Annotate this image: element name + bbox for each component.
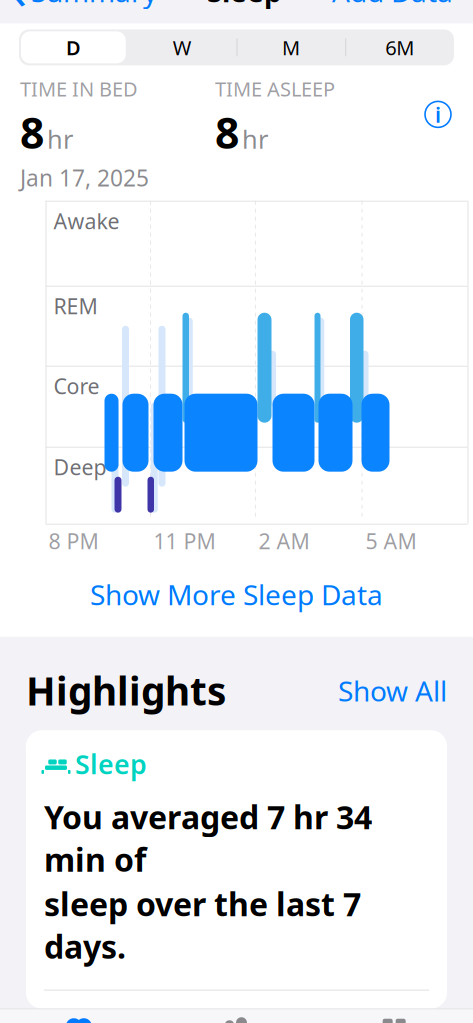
staticText: Highlights xyxy=(26,665,226,716)
button[interactable]: About sleep data xyxy=(421,97,455,131)
staticText: 2 AM xyxy=(258,527,309,555)
button[interactable]: Sharing xyxy=(158,1009,315,1023)
staticText: ‹ xyxy=(12,0,27,21)
button[interactable]: 6M xyxy=(345,29,454,65)
button[interactable]: W xyxy=(128,29,237,65)
staticText: Sleep xyxy=(75,746,147,782)
staticText: REM xyxy=(53,292,97,320)
staticText: 11 PM xyxy=(153,527,215,555)
staticText: Summary xyxy=(31,0,157,10)
staticText: 5 AM xyxy=(365,527,416,555)
staticText: W xyxy=(173,34,192,61)
staticText: D xyxy=(66,34,81,61)
button[interactable]: M xyxy=(236,29,345,65)
staticText: TIME IN BED xyxy=(20,75,138,102)
staticText: Sleep xyxy=(207,0,282,10)
button[interactable]: Browse xyxy=(315,1009,473,1023)
staticText: M xyxy=(282,34,300,61)
staticText: Deep xyxy=(53,453,106,481)
staticText: i xyxy=(435,100,441,128)
button[interactable]: Summary xyxy=(0,1009,158,1023)
button[interactable]: ‹ xyxy=(0,0,157,27)
button[interactable]: D xyxy=(19,29,128,65)
button[interactable]: Show All xyxy=(338,672,447,709)
staticText: hr xyxy=(242,122,268,156)
staticText: Add Data xyxy=(332,0,453,10)
staticText: 8 PM xyxy=(48,527,98,555)
staticText: Awake xyxy=(53,207,119,235)
staticText: You averaged 7 hr 34 min of xyxy=(44,796,372,881)
staticText: 8 xyxy=(215,104,239,161)
staticText: TIME ASLEEP xyxy=(215,75,335,102)
button[interactable]: Add Data xyxy=(332,0,473,16)
staticText: Show All xyxy=(338,672,447,709)
staticText: Jan 17, 2025 xyxy=(20,163,149,193)
staticText: hr xyxy=(47,122,73,156)
staticText: Core xyxy=(53,372,99,400)
staticText: 8 xyxy=(20,104,44,161)
staticText: 6M xyxy=(385,34,414,61)
staticText: Show More Sleep Data xyxy=(90,576,383,613)
button[interactable]: Show More Sleep Data xyxy=(0,562,473,627)
staticText: sleep over the last 7 days. xyxy=(44,883,361,968)
